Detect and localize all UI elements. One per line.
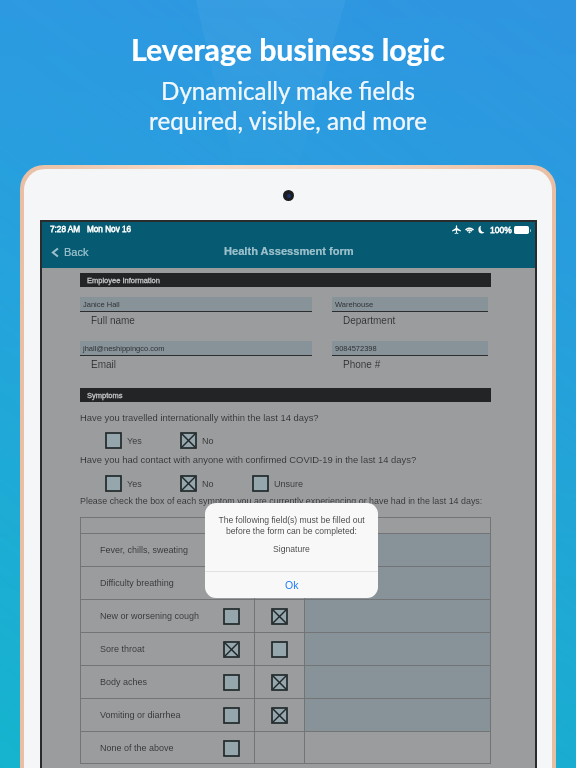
staticText: 100% (490, 225, 512, 234)
staticText: Warehouse (335, 300, 374, 308)
staticText: Fever, chills, sweating (100, 545, 224, 555)
staticText: Symptoms (87, 391, 123, 399)
button[interactable]: Yes (106, 476, 142, 491)
button[interactable]: No (181, 433, 214, 448)
staticText: New or worsening cough (100, 611, 224, 621)
button[interactable]: Difficulty breathing (80, 567, 491, 599)
staticText: Have you travelled internationally withi… (80, 412, 319, 423)
button[interactable]: No (181, 476, 214, 491)
staticText: Employee Information (87, 276, 160, 284)
staticText: Additional details (311, 517, 372, 526)
staticText: Vomiting or diarrhea (100, 710, 224, 720)
other: Airplane mode (452, 225, 461, 234)
button[interactable]: Ok (205, 572, 378, 598)
staticText: Janice Hall (83, 300, 120, 308)
staticText: Back (64, 246, 89, 258)
staticText: None of the above (100, 743, 224, 753)
staticText: Yes (127, 436, 142, 446)
staticText: 7:28 AM (50, 225, 81, 234)
button[interactable]: Vomiting or diarrhea (80, 699, 491, 731)
button[interactable]: Yes (106, 433, 142, 448)
button[interactable]: Sore throat (80, 633, 491, 665)
staticText: Difficulty breathing (100, 578, 224, 588)
staticText: No (202, 479, 214, 489)
staticText: 9084572398 (335, 344, 377, 352)
button[interactable]: Back (42, 240, 99, 264)
staticText: No (202, 436, 214, 446)
staticText: Unsure (274, 479, 304, 489)
staticText: Sore throat (100, 644, 224, 654)
staticText: Yes (127, 479, 142, 489)
button[interactable]: Fever, chills, sweating (80, 534, 491, 566)
staticText: Full name (91, 315, 135, 326)
staticText: Email (91, 359, 117, 370)
staticText: Have you had contact with anyone with co… (80, 454, 417, 465)
staticText: The following field(s) must be filled ou… (205, 515, 378, 536)
staticText: Body aches (100, 677, 224, 687)
button[interactable]: Unsure (253, 476, 304, 491)
button[interactable]: Body aches (80, 666, 491, 698)
staticText: Phone # (343, 359, 381, 370)
staticText: Ok (285, 579, 299, 591)
staticText: Please check the box of each symptom you… (80, 496, 483, 506)
staticText: Signature (205, 544, 378, 554)
staticText: Leverage business logic (131, 31, 445, 67)
staticText: Mon Nov 16 (87, 225, 132, 234)
button[interactable]: None of the above (80, 732, 491, 764)
staticText: Health Assessment form (224, 245, 354, 257)
staticText: Department (343, 315, 396, 326)
staticText: Dynamically make fields required, visibl… (149, 76, 427, 136)
other: Wi-Fi (465, 225, 474, 234)
staticText: jhall@neshippingco.com (83, 344, 165, 352)
other: Do not disturb (478, 225, 486, 234)
button[interactable]: New or worsening cough (80, 600, 491, 632)
